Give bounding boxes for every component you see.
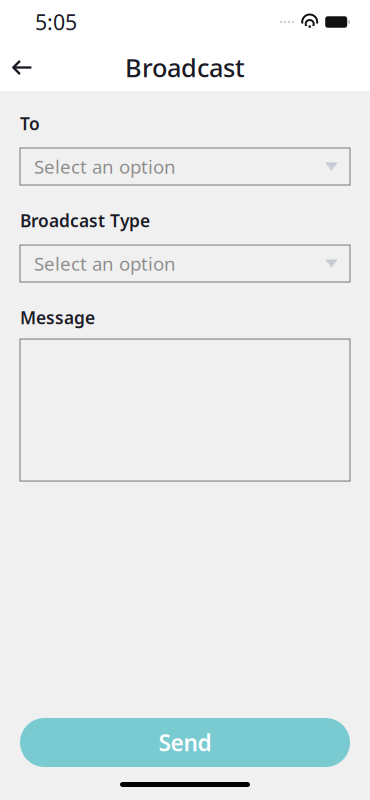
button[interactable]: Select an option: [20, 148, 350, 185]
staticText: Broadcast Type: [20, 209, 150, 232]
staticText: Select an option: [34, 251, 176, 276]
button[interactable]: Select an option: [20, 245, 350, 282]
staticText: 5:05: [35, 8, 77, 36]
button[interactable]: Send: [20, 718, 350, 767]
staticText: Broadcast: [125, 51, 245, 84]
button[interactable]: Message: [20, 339, 350, 481]
button[interactable]: Back: [0, 45, 44, 89]
staticText: Message: [20, 306, 95, 329]
staticText: Select an option: [34, 154, 176, 179]
staticText: To: [20, 112, 40, 135]
staticText: Send: [158, 727, 211, 757]
